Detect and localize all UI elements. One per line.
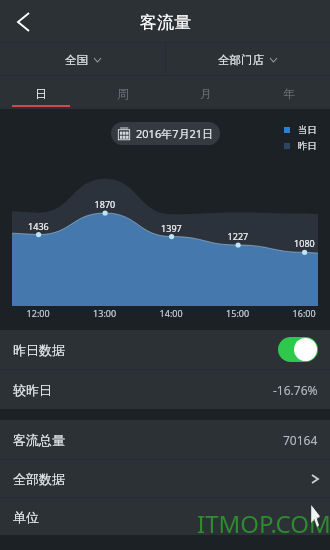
button[interactable]: 年 (247, 76, 330, 109)
staticText: 昨日 (298, 140, 317, 152)
button[interactable]: 全国 (0, 43, 165, 75)
staticText: 全部数据 (13, 471, 65, 487)
staticText: 昨日数据 (13, 342, 65, 358)
staticText: 全国 (65, 53, 88, 67)
button[interactable]: 全部门店 (165, 43, 330, 75)
staticText: 日 (35, 86, 47, 101)
staticText: ITMOP.COM (197, 507, 330, 540)
button[interactable]: 周 (82, 76, 164, 109)
staticText: 2016年7月21日 (136, 126, 214, 141)
staticText: 当日 (298, 124, 317, 136)
staticText: 单位 (13, 509, 39, 525)
staticText: 年 (283, 86, 295, 101)
button[interactable]: 月 (164, 76, 247, 109)
staticText: 客流量 (140, 12, 191, 33)
staticText: 月 (200, 86, 212, 101)
staticText: 周 (117, 86, 129, 101)
staticText: -16.76% (273, 382, 318, 398)
button[interactable]: Back (0, 0, 46, 42)
button[interactable]: 昨日数据 (0, 330, 330, 369)
button[interactable]: 2016年7月21日 (111, 122, 220, 145)
button[interactable]: 全部数据 (0, 460, 330, 497)
staticText: 70164 (283, 432, 318, 448)
staticText: 较昨日 (13, 382, 52, 398)
button[interactable]: 客流总量 (0, 420, 330, 459)
staticText: 客流总量 (13, 432, 65, 448)
button[interactable]: 较昨日 (0, 370, 330, 409)
button[interactable]: 单位 (0, 498, 330, 535)
staticText: 全部门店 (218, 53, 264, 67)
button[interactable]: 日 (0, 76, 82, 109)
